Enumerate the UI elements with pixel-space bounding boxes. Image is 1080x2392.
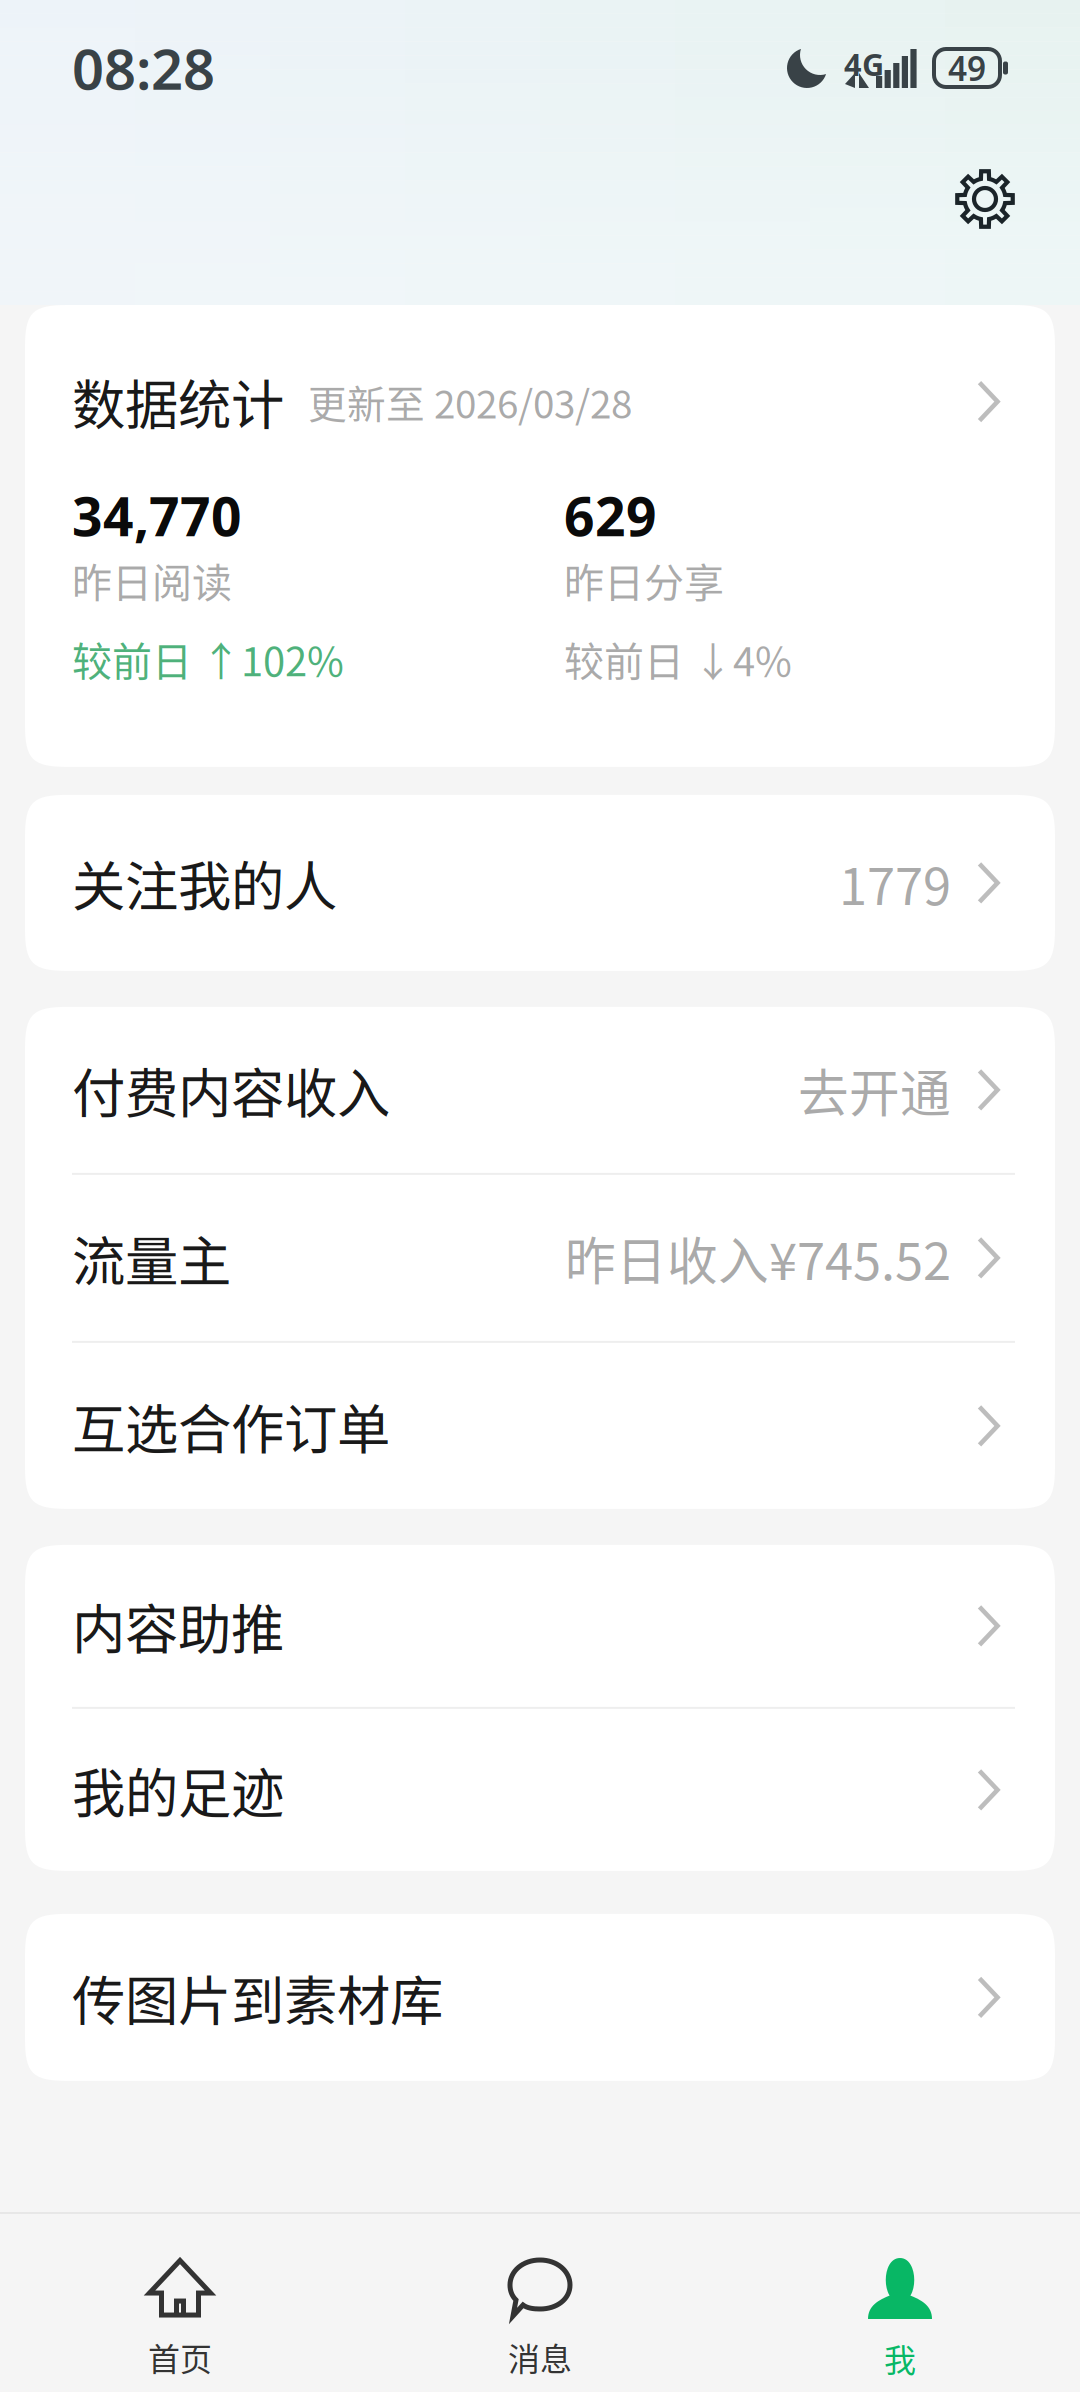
staticText: 629 bbox=[564, 480, 657, 551]
button[interactable]: 消息 bbox=[360, 2213, 720, 2392]
staticText: 互选合作订单 bbox=[72, 1387, 390, 1464]
button[interactable]: 内容助推 bbox=[25, 1545, 1055, 1707]
staticText: 付费内容收入 bbox=[72, 1051, 390, 1128]
button[interactable]: 我的足迹 bbox=[25, 1709, 1055, 1871]
button[interactable]: 关注我的人 bbox=[25, 795, 1055, 971]
button[interactable]: 流量主 bbox=[25, 1175, 1055, 1341]
staticText: 更新至 2026/03/28 bbox=[308, 374, 632, 430]
staticText: 4G bbox=[844, 44, 884, 84]
button[interactable]: 我 bbox=[720, 2213, 1080, 2392]
staticText: 较前日 ↓4% bbox=[564, 630, 792, 688]
staticText: 34,770 bbox=[72, 480, 242, 551]
staticText: 传图片到素材库 bbox=[72, 1959, 443, 2036]
staticText: 数据统计 bbox=[72, 363, 284, 440]
staticText: 昨日阅读 bbox=[72, 551, 232, 609]
staticText: 流量主 bbox=[72, 1219, 231, 1296]
staticText: 内容助推 bbox=[72, 1587, 284, 1664]
staticText: 首页 bbox=[148, 2334, 212, 2380]
button[interactable]: 首页 bbox=[0, 2213, 360, 2392]
staticText: 1779 bbox=[839, 846, 951, 920]
button[interactable]: 传图片到素材库 bbox=[25, 1914, 1055, 2081]
staticText: 关注我的人 bbox=[72, 844, 337, 921]
staticText: 较前日 ↑102% bbox=[72, 630, 344, 688]
button[interactable]: 付费内容收入 bbox=[25, 1007, 1055, 1173]
staticText: 我的足迹 bbox=[72, 1751, 284, 1828]
button[interactable]: 互选合作订单 bbox=[25, 1343, 1055, 1509]
staticText: 昨日分享 bbox=[564, 551, 724, 609]
staticText: 49 bbox=[948, 46, 986, 90]
button[interactable]: 数据统计 bbox=[0, 305, 1080, 767]
button[interactable]: Settings bbox=[954, 168, 1016, 230]
staticText: 我 bbox=[884, 2335, 916, 2381]
staticText: 昨日收入¥745.52 bbox=[565, 1221, 951, 1295]
staticText: 消息 bbox=[508, 2334, 572, 2380]
staticText: 去开通 bbox=[798, 1053, 951, 1127]
staticText: 08:28 bbox=[72, 31, 215, 105]
